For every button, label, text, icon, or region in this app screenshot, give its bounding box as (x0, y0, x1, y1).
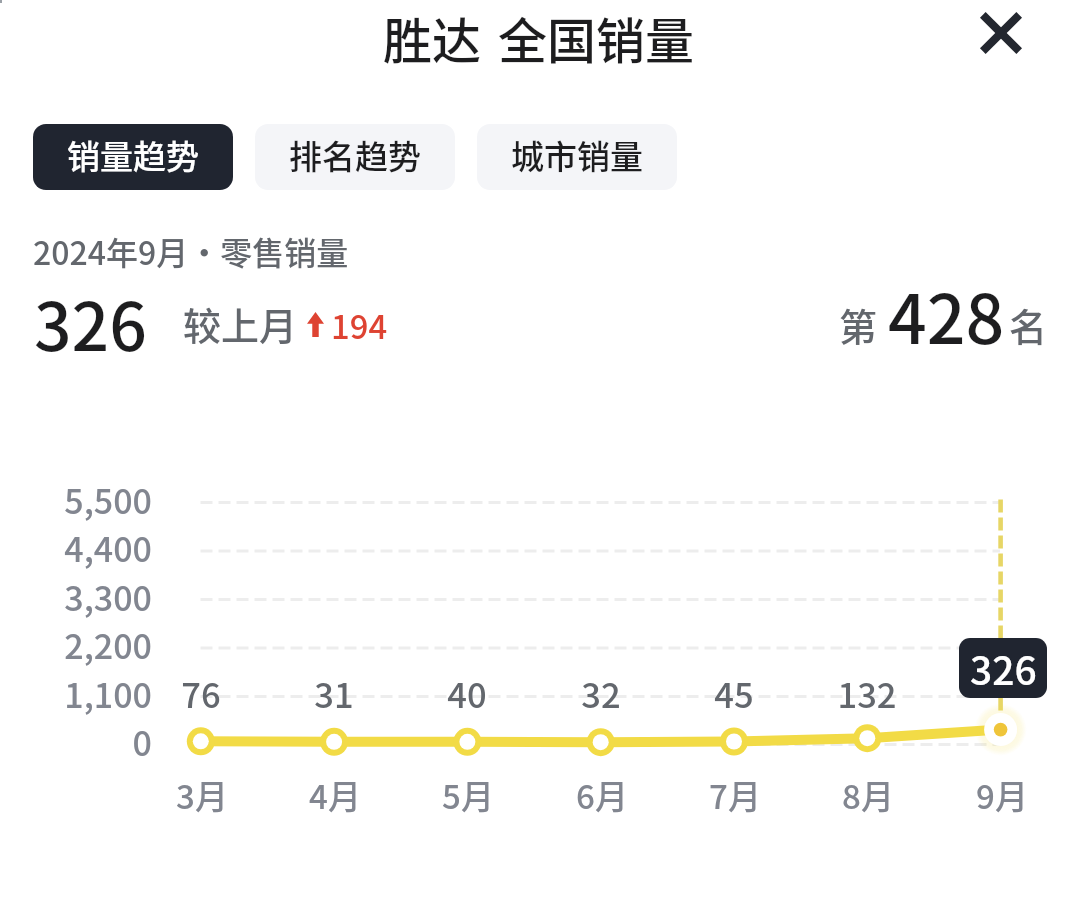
staticText: 5,500 (32, 475, 152, 524)
staticText: 9月 (936, 771, 1068, 819)
staticText: 2,200 (32, 620, 152, 669)
staticText: 较上月 (183, 296, 298, 351)
button[interactable]: 5月 (402, 714, 534, 819)
staticText: 7月 (669, 771, 801, 819)
button[interactable]: 4月 (269, 714, 401, 819)
staticText: 排名趋势 (289, 131, 421, 179)
staticText: 326 (970, 640, 1037, 696)
button[interactable]: 8月 (802, 714, 934, 819)
button[interactable]: 326 (959, 638, 1047, 698)
button[interactable]: 9月 (936, 714, 1068, 819)
staticText: 3,300 (32, 572, 152, 621)
button[interactable]: 销量趋势 (33, 124, 233, 190)
staticText: 31 (274, 668, 394, 718)
staticText: 32 (541, 668, 661, 718)
staticText: 0 (32, 717, 152, 766)
staticText: 5月 (402, 771, 534, 819)
staticText: 城市销量 (511, 131, 643, 179)
staticText: 4,400 (32, 523, 152, 572)
staticText: 4月 (269, 771, 401, 819)
staticText: 40 (407, 668, 527, 718)
staticText: 132 (807, 668, 927, 718)
staticText: 第 (839, 297, 878, 352)
button[interactable]: 6月 (536, 714, 668, 819)
button[interactable]: 7月 (669, 714, 801, 819)
staticText: 2024年9月·零售销量 (33, 228, 349, 274)
button[interactable]: Close (971, 3, 1031, 63)
staticText: 名 (1009, 297, 1048, 352)
staticText: 胜达 (383, 2, 482, 73)
staticText: 1,100 (32, 669, 152, 718)
staticText: 45 (674, 668, 794, 718)
staticText: 6月 (536, 771, 668, 819)
staticText: 428 (888, 265, 1005, 363)
staticText: 326 (34, 274, 147, 370)
staticText: 76 (141, 668, 261, 718)
button[interactable]: 城市销量 (477, 124, 677, 190)
staticText: 销量趋势 (67, 131, 199, 179)
staticText: 194 (331, 301, 388, 348)
staticText: 8月 (802, 771, 934, 819)
staticText: 3月 (136, 771, 268, 819)
staticText: 全国销量 (498, 2, 695, 73)
button[interactable]: 3月 (136, 714, 268, 819)
button[interactable]: 排名趋势 (255, 124, 455, 190)
